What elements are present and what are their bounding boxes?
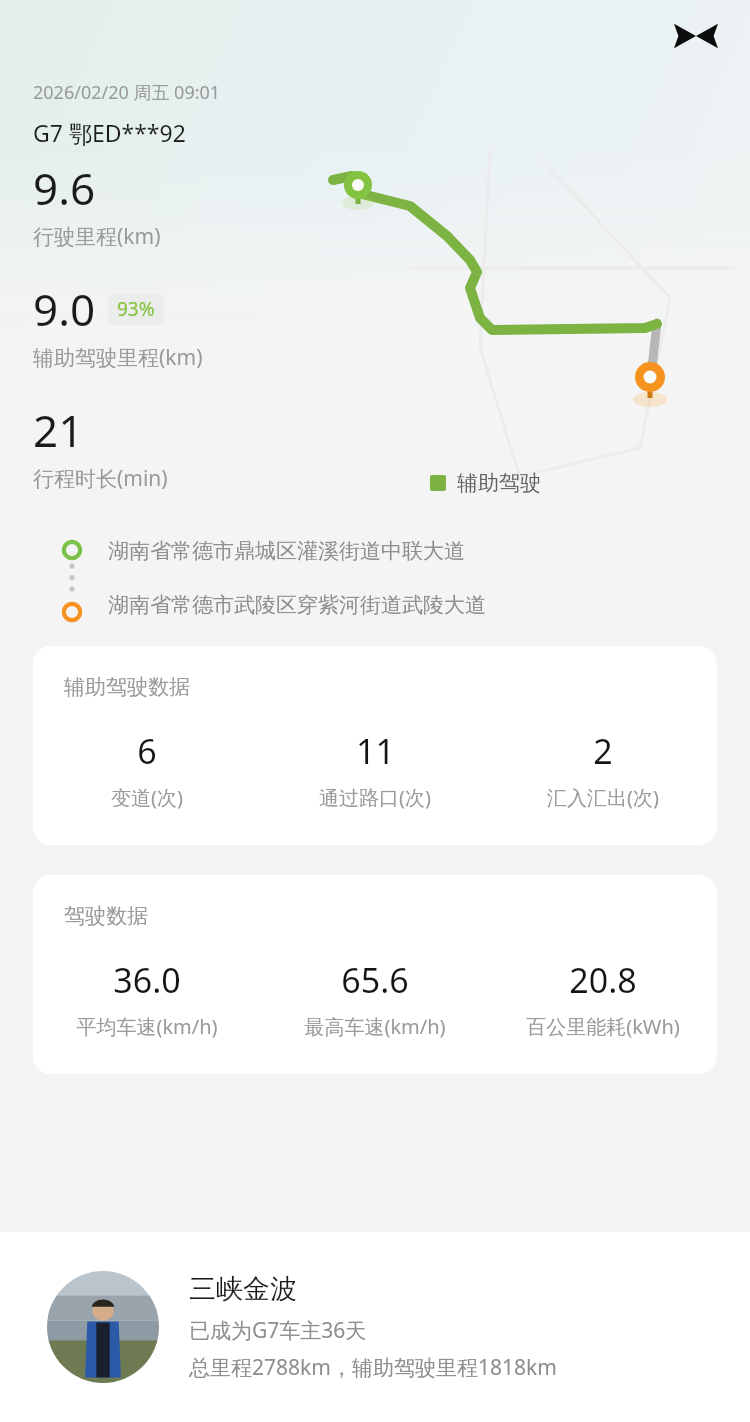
staticText: 总里程2788km，辅助驾驶里程1818km bbox=[189, 1353, 557, 1382]
staticText: 9.6 bbox=[33, 158, 96, 218]
button[interactable]: 辅助驾驶数据 bbox=[33, 646, 717, 845]
staticText: 36.0 bbox=[113, 957, 181, 1003]
staticText: 最高车速(km/h) bbox=[304, 1013, 446, 1040]
staticText: 通过路口(次) bbox=[319, 784, 431, 811]
staticText: 已成为G7车主36天 bbox=[189, 1316, 367, 1345]
button[interactable]: 三峡金波 bbox=[0, 1232, 750, 1422]
staticText: 行程时长(min) bbox=[33, 464, 168, 493]
staticText: 辅助驾驶 bbox=[457, 470, 541, 496]
button[interactable]: 驾驶数据 bbox=[33, 875, 717, 1074]
staticText: 辅助驾驶数据 bbox=[64, 674, 190, 700]
staticText: 变道(次) bbox=[111, 784, 183, 811]
staticText: 93% bbox=[117, 296, 155, 322]
staticText: 6 bbox=[137, 728, 157, 774]
staticText: 汇入汇出(次) bbox=[547, 784, 659, 811]
staticText: 湖南省常德市鼎城区灌溪街道中联大道 bbox=[108, 538, 465, 564]
staticText: 2026/02/20 周五 09:01 bbox=[33, 80, 221, 105]
staticText: 行驶里程(km) bbox=[33, 222, 161, 251]
staticText: G7 鄂ED***92 bbox=[33, 117, 186, 148]
staticText: 三峡金波 bbox=[189, 1272, 297, 1306]
staticText: 9.0 bbox=[33, 279, 96, 339]
staticText: 百公里能耗(kWh) bbox=[526, 1013, 680, 1040]
staticText: 湖南省常德市武陵区穿紫河街道武陵大道 bbox=[108, 592, 486, 618]
staticText: 平均车速(km/h) bbox=[76, 1013, 218, 1040]
staticText: 20.8 bbox=[569, 957, 637, 1003]
staticText: 65.6 bbox=[341, 957, 409, 1003]
staticText: 2 bbox=[593, 728, 613, 774]
staticText: 21 bbox=[33, 400, 84, 460]
staticText: 辅助驾驶里程(km) bbox=[33, 343, 203, 372]
staticText: 驾驶数据 bbox=[64, 903, 148, 929]
button[interactable]: XPeng logo bbox=[672, 12, 720, 60]
staticText: 11 bbox=[356, 728, 395, 774]
